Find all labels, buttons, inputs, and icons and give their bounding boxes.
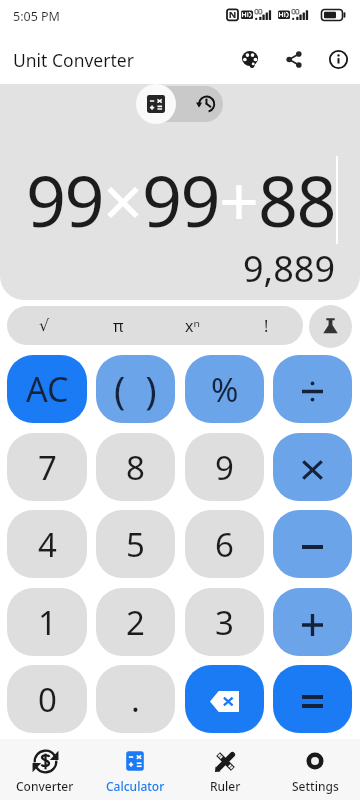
button[interactable]: 3 — [185, 588, 264, 656]
staticText: 6 — [215, 522, 234, 567]
staticText: Calculator — [106, 778, 165, 794]
other: Divide — [302, 381, 323, 402]
button[interactable]: Share — [272, 36, 316, 84]
staticText: 7 — [38, 445, 57, 490]
other: Delete — [210, 691, 239, 712]
staticText: Settings — [292, 778, 339, 794]
button[interactable]: ! — [229, 306, 303, 345]
staticText: 0 — [38, 677, 57, 722]
button[interactable]: Add — [273, 588, 352, 656]
button[interactable]: Info — [316, 36, 360, 84]
button[interactable]: 6 — [185, 510, 264, 578]
button[interactable]: Ruler — [180, 739, 270, 800]
staticText: 5 — [126, 522, 145, 567]
staticText: . — [131, 677, 140, 722]
button[interactable]: xⁿ — [155, 306, 229, 345]
button[interactable]: AC — [7, 355, 87, 423]
staticText: 9 — [215, 445, 234, 490]
other: Add — [302, 614, 323, 636]
staticText: 99 — [142, 152, 219, 247]
button[interactable]: Calculator mode — [136, 84, 176, 124]
button[interactable]: ( ) — [96, 355, 175, 423]
staticText: √ — [39, 316, 50, 335]
staticText: + — [219, 152, 258, 247]
button[interactable]: Delete — [185, 665, 264, 733]
button[interactable]: Multiply — [273, 433, 352, 501]
button[interactable]: Scientific — [309, 305, 352, 348]
other: Multiply — [303, 461, 322, 479]
button[interactable]: √ — [7, 306, 81, 345]
button[interactable]: Subtract — [273, 510, 352, 578]
button[interactable]: History — [187, 86, 223, 122]
button[interactable]: 0 — [7, 665, 87, 733]
staticText: π — [113, 315, 124, 337]
staticText: 8 — [126, 445, 145, 490]
staticText: 5:05 PM — [13, 8, 60, 25]
button[interactable]: π — [81, 306, 155, 345]
button[interactable]: Theme — [228, 36, 272, 84]
button[interactable]: % — [185, 355, 264, 423]
staticText: 9,889 — [243, 244, 336, 293]
staticText: 1 — [38, 600, 57, 645]
staticText: AC — [26, 366, 69, 412]
staticText: × — [103, 152, 142, 247]
button[interactable]: 2 — [96, 588, 175, 656]
button[interactable]: Equals — [273, 665, 352, 733]
button[interactable]: . — [96, 665, 175, 733]
button[interactable]: Settings — [270, 739, 360, 800]
staticText: % — [211, 367, 239, 412]
staticText: ( ) — [114, 363, 157, 415]
staticText: 2 — [126, 600, 145, 645]
staticText: Unit Converter — [13, 48, 134, 72]
button[interactable]: Converter — [0, 739, 90, 800]
staticText: Converter — [16, 778, 74, 794]
button[interactable]: 1 — [7, 588, 87, 656]
button[interactable]: Calculator — [90, 739, 180, 800]
button[interactable]: Divide — [273, 355, 352, 423]
button[interactable]: 4 — [7, 510, 87, 578]
button[interactable]: 8 — [96, 433, 175, 501]
button[interactable]: 5 — [96, 510, 175, 578]
staticText: Ruler — [210, 778, 241, 794]
staticText: ! — [264, 315, 269, 337]
staticText: 4 — [38, 522, 57, 567]
button[interactable]: 7 — [7, 433, 87, 501]
other: Equals — [302, 695, 323, 708]
staticText: 88 — [258, 152, 335, 247]
staticText: 99 — [26, 152, 103, 247]
staticText: 3 — [215, 600, 234, 645]
staticText: xⁿ — [185, 315, 200, 337]
button[interactable]: 9 — [185, 433, 264, 501]
